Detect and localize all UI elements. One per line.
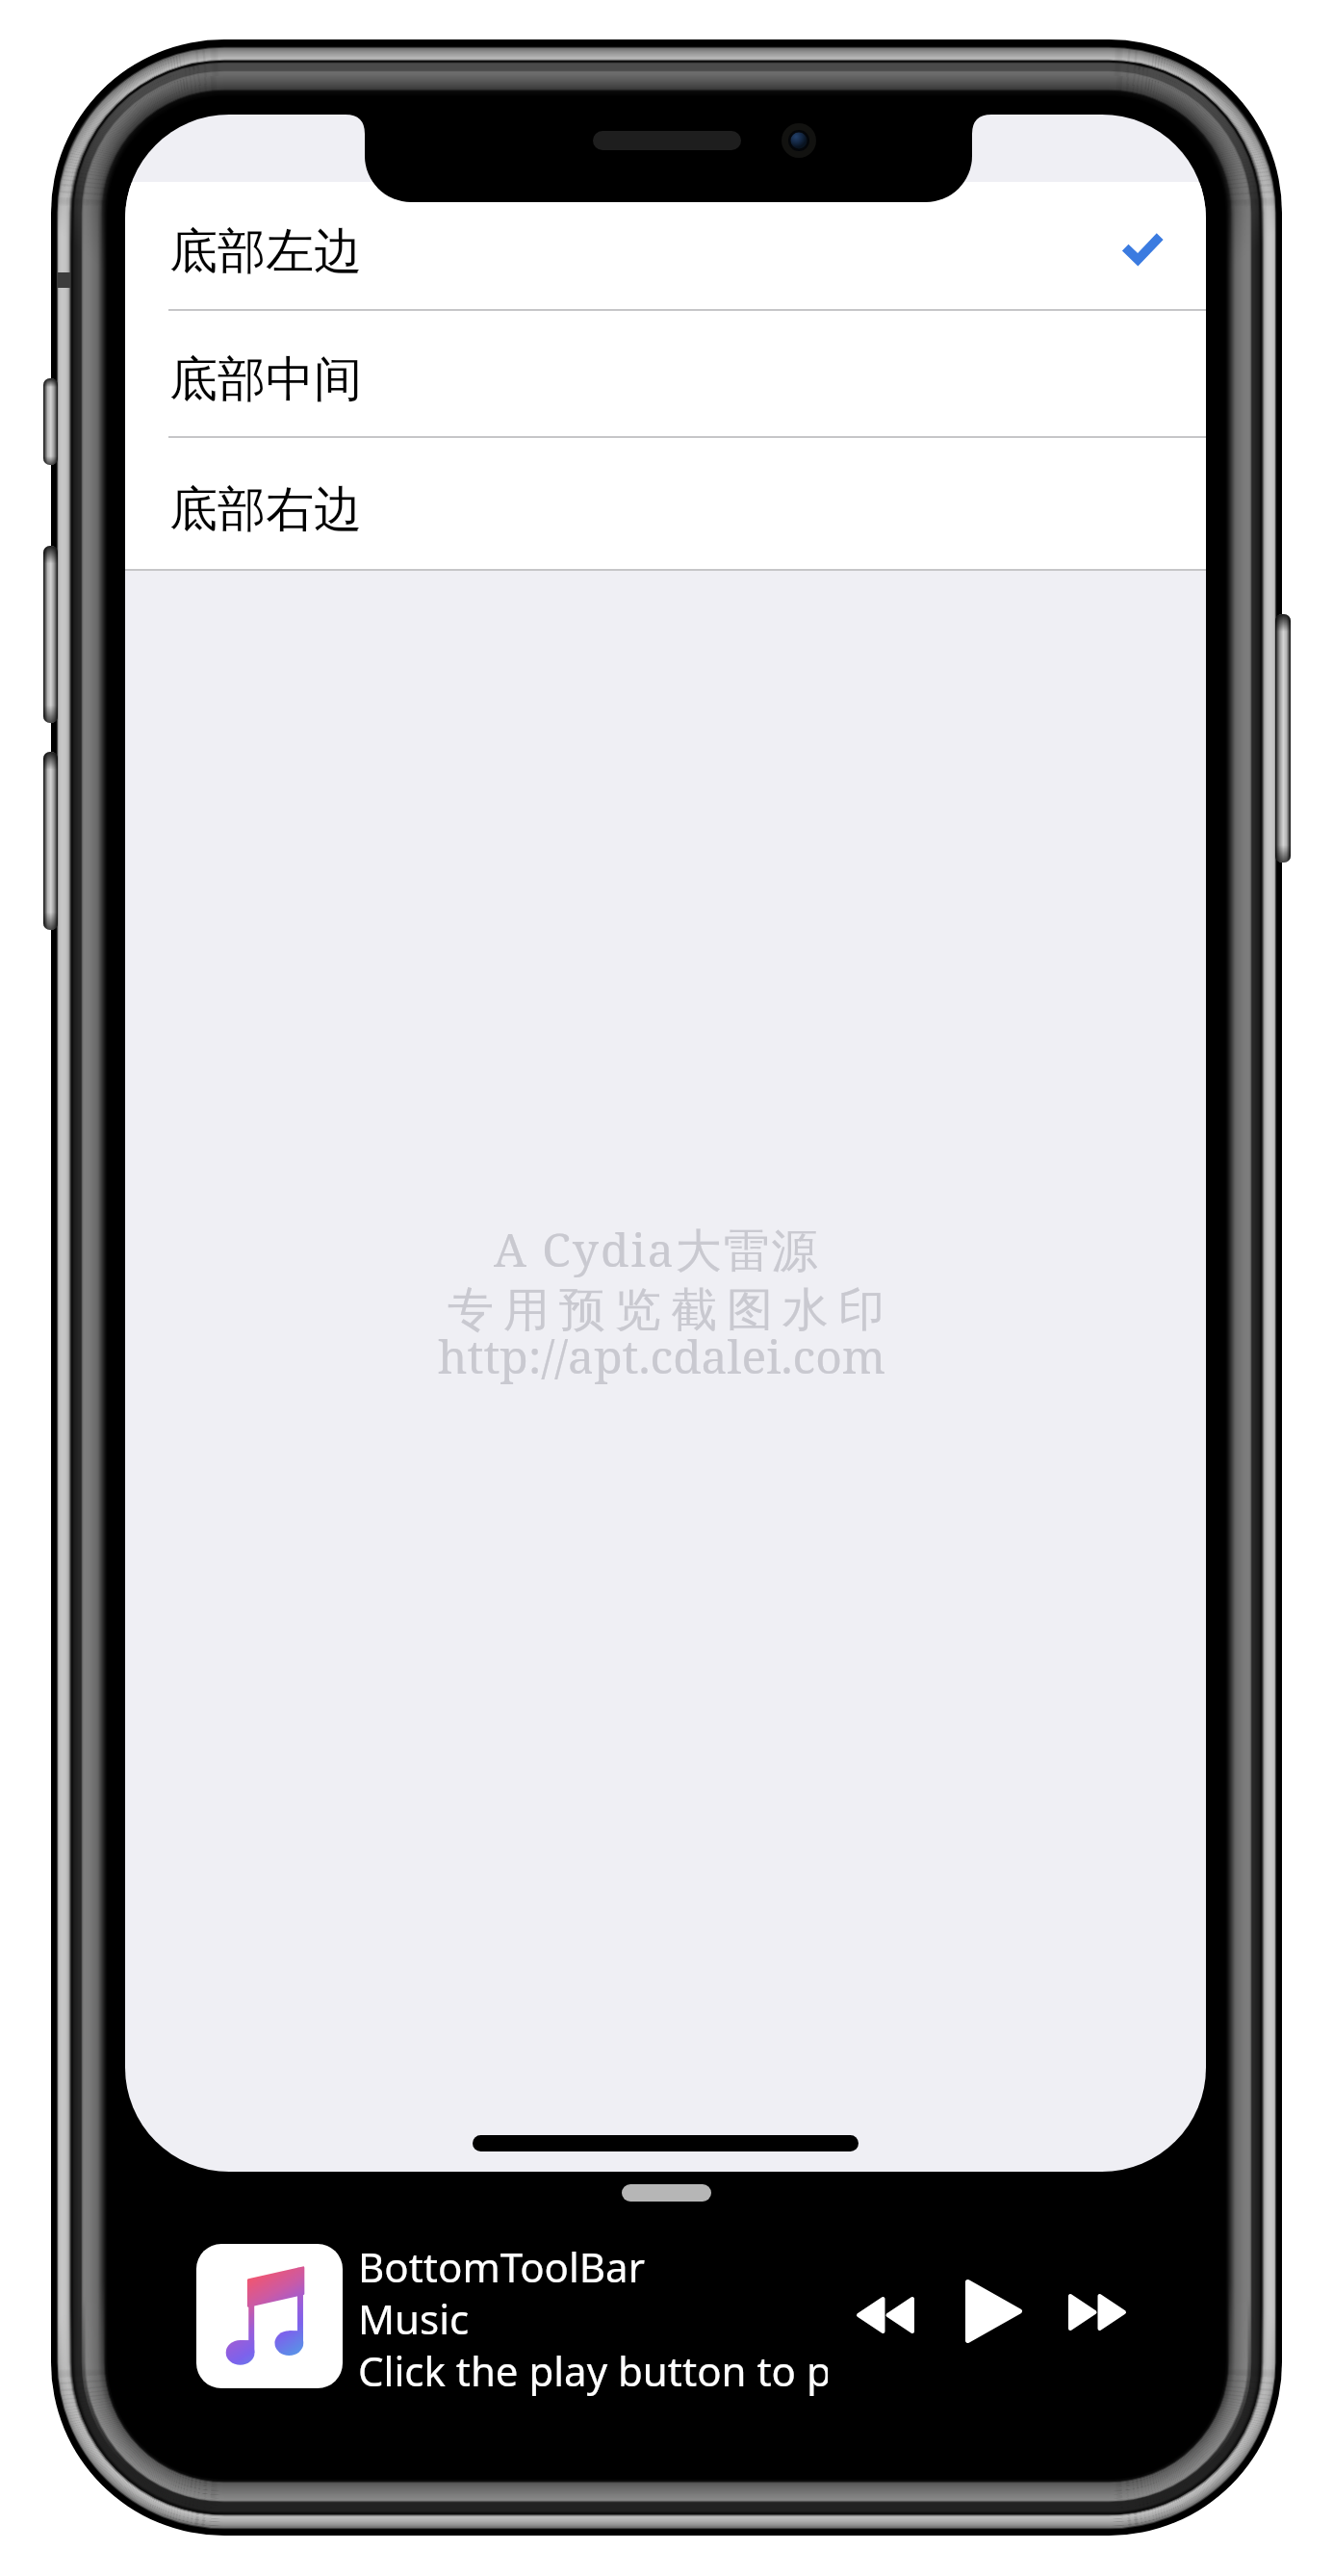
staticText: 底部右边 — [169, 479, 362, 540]
staticText: 专用预览截图水印 — [443, 1281, 889, 1339]
button[interactable]: 底部中间 — [125, 311, 1206, 438]
staticText: BottomToolBar — [358, 2239, 645, 2294]
button[interactable]: 底部左边 — [125, 182, 1206, 311]
button[interactable]: Play — [965, 2279, 1022, 2344]
staticText: Music — [358, 2291, 470, 2346]
staticText: 底部中间 — [169, 349, 362, 410]
button[interactable]: Album art — [196, 2244, 343, 2388]
button[interactable]: Previous track — [857, 2297, 914, 2333]
staticText: Click the play button to p — [358, 2343, 828, 2398]
button[interactable]: 底部右边 — [125, 438, 1206, 571]
staticText: 底部左边 — [169, 221, 362, 282]
button[interactable]: Next track — [1068, 2294, 1126, 2331]
staticText: A Cydia大雷源 — [494, 1218, 820, 1281]
staticText: http://apt.cdalei.com — [438, 1325, 886, 1387]
